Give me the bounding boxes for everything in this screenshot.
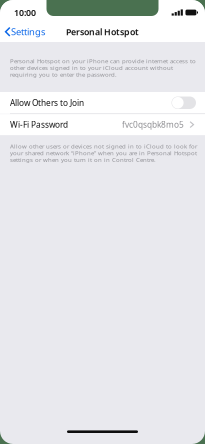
button[interactable]: Allow Others to Join	[0, 92, 205, 113]
button[interactable]: Settings	[0, 23, 50, 41]
staticText: Personal Hotspot	[66, 26, 139, 38]
staticText: Settings	[11, 26, 45, 38]
staticText: Allow Others to Join	[10, 97, 84, 108]
staticText: fvc0qsqbk8mo5	[122, 119, 184, 130]
button[interactable]: Wi-Fi Password	[0, 114, 205, 135]
staticText: Allow other users or devices not signed …	[10, 142, 197, 164]
staticText: 10:00	[14, 7, 36, 18]
staticText: Personal Hotspot on your iPhone can prov…	[10, 57, 196, 78]
staticText: Wi-Fi Password	[10, 119, 68, 130]
